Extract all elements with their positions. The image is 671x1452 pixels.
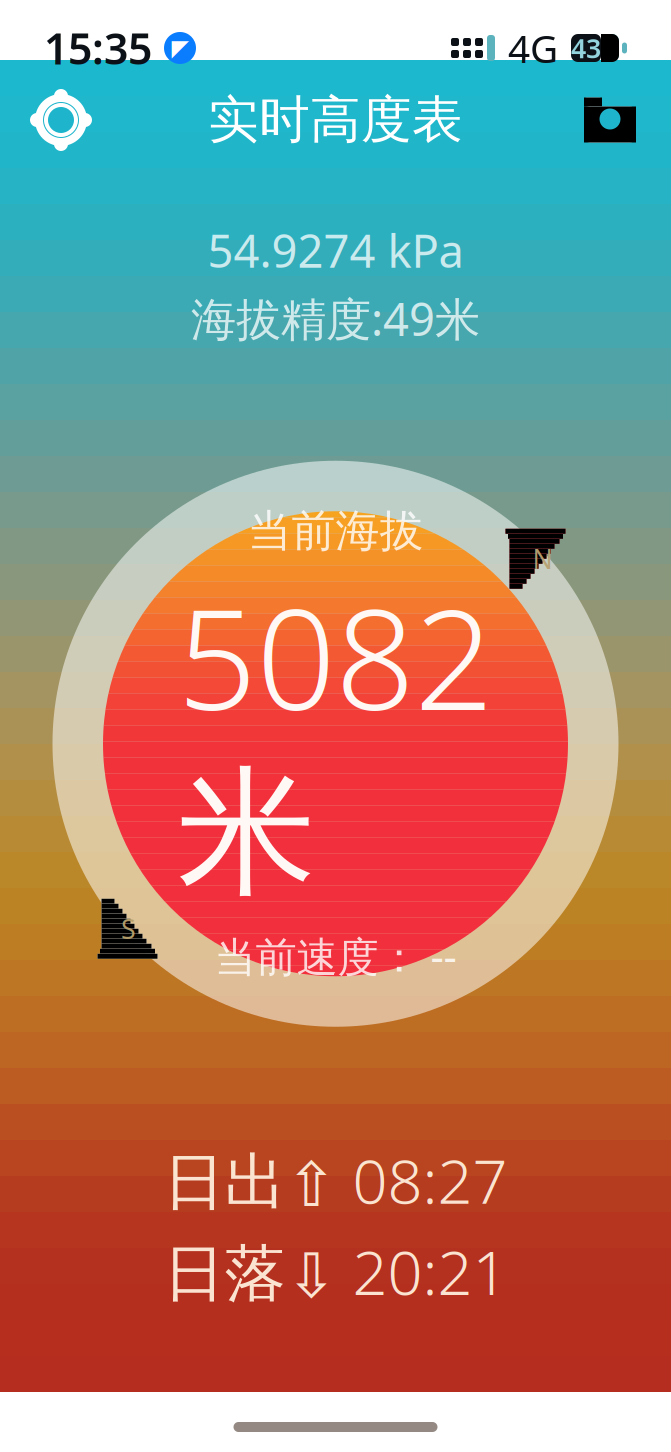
- staticText: S: [121, 911, 136, 946]
- staticText: 15:35: [44, 20, 152, 76]
- staticText: ◤: [171, 35, 188, 61]
- staticText: N: [532, 541, 552, 576]
- staticText: 当前速度： --: [214, 929, 456, 983]
- staticText: 54.9274 kPa: [207, 220, 463, 280]
- staticText: 海拔精度:49米: [191, 288, 480, 348]
- button[interactable]: 拍照: [567, 80, 653, 160]
- staticText: 5082 米: [177, 564, 493, 919]
- staticText: 4G: [508, 22, 558, 74]
- staticText: 43: [571, 30, 601, 66]
- staticText: 日落⇩ 20:21: [163, 1231, 507, 1312]
- staticText: 日出⇧ 08:27: [163, 1139, 507, 1220]
- button[interactable]: 设置: [18, 80, 104, 160]
- staticText: 实时高度表: [208, 89, 463, 151]
- staticText: 当前海拔: [247, 504, 423, 558]
